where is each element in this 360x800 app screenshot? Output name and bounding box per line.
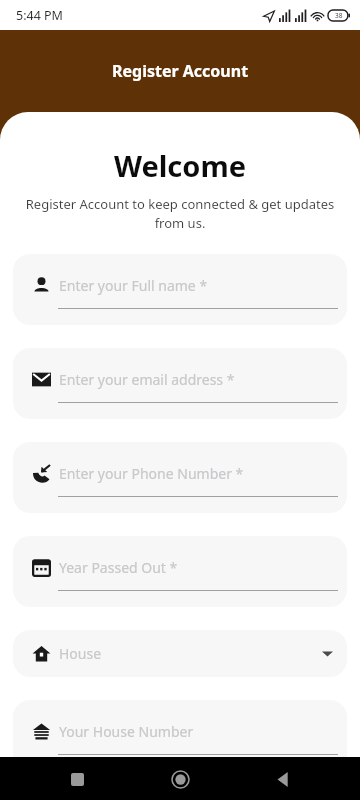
button[interactable]: Back xyxy=(266,762,300,796)
staticText: Enter your Full name * xyxy=(59,276,208,295)
staticText: House xyxy=(59,644,102,663)
button[interactable]: House number xyxy=(13,700,347,771)
button[interactable]: Email address xyxy=(13,348,347,419)
staticText: 38 xyxy=(335,11,343,20)
staticText: Register Account to keep connected & get… xyxy=(24,195,336,232)
button[interactable]: House xyxy=(13,630,347,677)
staticText: Your House Number xyxy=(59,722,194,741)
other: Full name xyxy=(32,276,51,295)
other: House xyxy=(32,644,51,663)
other: Open house dropdown xyxy=(322,648,333,659)
staticText: Welcome xyxy=(0,146,360,185)
staticText: Year Passed Out * xyxy=(59,558,178,577)
staticText: 5:44 PM xyxy=(16,7,63,24)
staticText: Enter your Phone Number * xyxy=(59,464,244,483)
button[interactable]: Full name xyxy=(13,254,347,325)
other: Year passed out xyxy=(32,558,51,577)
other: Phone number xyxy=(32,464,51,483)
other: House number xyxy=(32,722,51,741)
button[interactable]: Home xyxy=(163,762,197,796)
button[interactable]: Recent apps xyxy=(60,762,94,796)
staticText: Register Account xyxy=(112,60,249,82)
staticText: Enter your email address * xyxy=(59,370,235,389)
button[interactable]: Phone number xyxy=(13,442,347,513)
other: Email address xyxy=(32,370,51,389)
button[interactable]: Year passed out xyxy=(13,536,347,607)
